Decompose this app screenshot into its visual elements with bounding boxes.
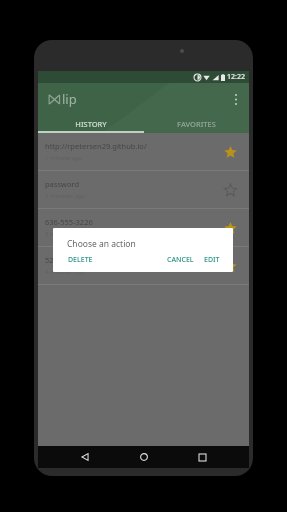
button[interactable]: FAVORITES	[143, 115, 249, 133]
staticText: EDIT	[204, 255, 220, 265]
staticText: Choose an action	[67, 238, 136, 250]
button[interactable]: Unfavorite	[218, 254, 242, 278]
staticText: 12:22	[227, 72, 245, 82]
button[interactable]: Home	[133, 446, 155, 468]
button[interactable]: EDIT	[199, 252, 225, 268]
staticText: HISTORY	[75, 119, 107, 129]
button[interactable]: HISTORY	[38, 115, 143, 133]
button[interactable]: Favorite	[218, 178, 242, 202]
staticText: FAVORITES	[177, 119, 216, 129]
button[interactable]: 520 Chestnut St, Philadelphia, PA 19106	[38, 247, 249, 285]
staticText: 636-555-3226	[45, 217, 93, 227]
staticText: http://rpetersen29.github.io/	[45, 141, 147, 151]
staticText: 520 Chestnut St, Philadelphia, PA 19106	[45, 255, 185, 265]
button[interactable]: Unfavorite	[218, 140, 242, 164]
button[interactable]: Recent apps	[191, 446, 213, 468]
staticText: password	[45, 179, 79, 189]
button[interactable]: CANCEL	[162, 252, 199, 268]
staticText: CANCEL	[167, 255, 194, 265]
button[interactable]: Back	[74, 446, 96, 468]
button[interactable]: More options	[223, 86, 249, 112]
button[interactable]: 636-555-3226	[38, 209, 249, 247]
staticText: 3 minutes ago	[45, 230, 86, 238]
button[interactable]: DELETE	[63, 252, 98, 268]
button[interactable]: Unfavorite	[218, 216, 242, 240]
staticText: 4 minutes ago	[45, 268, 86, 276]
button[interactable]: password	[38, 171, 249, 209]
staticText: DELETE	[68, 255, 93, 265]
staticText: lip	[62, 90, 77, 108]
button[interactable]: http://rpetersen29.github.io/	[38, 133, 249, 171]
